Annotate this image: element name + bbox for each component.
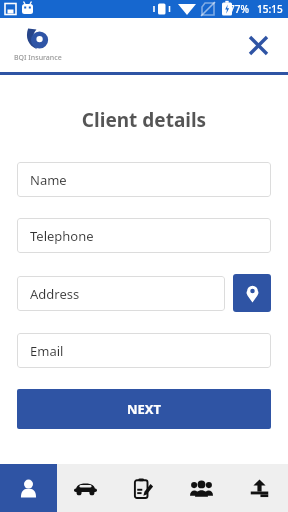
button[interactable]: Vehicle [57, 464, 114, 512]
button[interactable]: Passengers [172, 464, 230, 512]
staticText: 15:15 [257, 2, 283, 16]
button[interactable]: Email [17, 333, 271, 368]
button[interactable]: Close [238, 25, 278, 65]
staticText: NEXT [127, 400, 162, 418]
staticText: BQI Insurance [14, 53, 62, 63]
staticText: Client details [0, 107, 288, 133]
button[interactable]: NEXT [17, 389, 271, 429]
staticText: Telephone [30, 227, 94, 245]
staticText: Email [30, 342, 64, 360]
button[interactable]: Report [114, 464, 172, 512]
staticText: Name [30, 171, 67, 189]
button[interactable]: Name [17, 162, 271, 197]
staticText: 77% [229, 2, 249, 16]
button[interactable]: Address [17, 276, 225, 311]
button[interactable]: Upload [230, 464, 288, 512]
staticText: Address [30, 285, 80, 303]
button[interactable]: Pick location [233, 274, 271, 312]
button[interactable]: Telephone [17, 218, 271, 253]
button[interactable]: Client details [0, 464, 57, 512]
